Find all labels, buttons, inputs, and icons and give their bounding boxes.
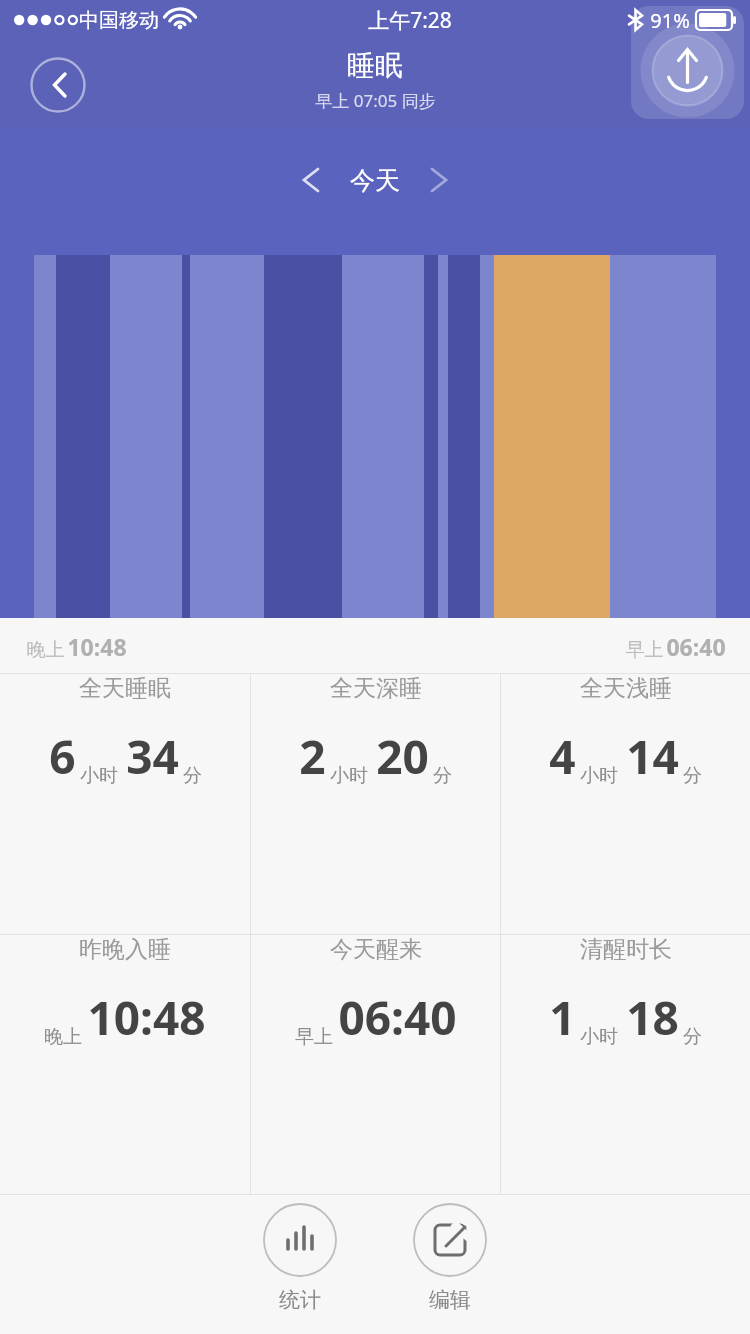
- staticText: 睡眠: [347, 48, 403, 83]
- staticText: 小时: [580, 1025, 618, 1049]
- staticText: 今天醒来: [330, 935, 422, 964]
- staticText: 18: [626, 986, 679, 1049]
- button[interactable]: Next day: [416, 157, 462, 203]
- button[interactable]: Back: [30, 57, 86, 113]
- staticText: 分: [183, 764, 202, 788]
- staticText: 中国移动: [79, 8, 159, 33]
- staticText: 2: [299, 725, 326, 788]
- staticText: 小时: [330, 764, 368, 788]
- button[interactable]: 清醒时长: [501, 935, 750, 1049]
- staticText: 上午7:28: [368, 6, 452, 35]
- button[interactable]: 昨晚入睡: [0, 935, 250, 1049]
- button[interactable]: Sync: [631, 6, 744, 119]
- staticText: 6: [49, 725, 76, 788]
- button[interactable]: 全天睡眠: [0, 674, 250, 788]
- staticText: 全天深睡: [330, 674, 422, 703]
- staticText: 早上: [295, 1025, 333, 1049]
- button[interactable]: 全天深睡: [251, 674, 500, 788]
- button[interactable]: 全天浅睡: [501, 674, 750, 788]
- staticText: 今天: [350, 165, 400, 196]
- staticText: 分: [683, 764, 702, 788]
- staticText: 小时: [80, 764, 118, 788]
- staticText: 91%: [650, 7, 690, 34]
- staticText: 小时: [580, 764, 618, 788]
- staticText: 晚上: [44, 1025, 82, 1049]
- staticText: 晚上: [24, 636, 67, 662]
- staticText: 编辑: [429, 1287, 471, 1313]
- staticText: 分: [683, 1025, 702, 1049]
- staticText: 34: [126, 725, 179, 788]
- staticText: 昨晚入睡: [79, 935, 171, 964]
- staticText: 10:48: [67, 631, 127, 662]
- staticText: 14: [626, 725, 679, 788]
- staticText: 20: [376, 725, 429, 788]
- button[interactable]: 编辑: [403, 1195, 497, 1321]
- button[interactable]: Previous day: [288, 157, 334, 203]
- staticText: 早上 07:05 同步: [315, 89, 436, 112]
- staticText: 分: [433, 764, 452, 788]
- button[interactable]: 今天: [334, 165, 416, 196]
- staticText: 4: [549, 725, 576, 788]
- staticText: 统计: [279, 1287, 321, 1313]
- staticText: 清醒时长: [580, 935, 672, 964]
- staticText: 全天浅睡: [580, 674, 672, 703]
- staticText: 早上: [623, 636, 666, 662]
- staticText: 全天睡眠: [79, 674, 171, 703]
- staticText: 06:40: [666, 631, 726, 662]
- button[interactable]: 统计: [253, 1195, 347, 1321]
- button[interactable]: 今天醒来: [251, 935, 500, 1049]
- staticText: 1: [549, 986, 576, 1049]
- staticText: 06:40: [338, 986, 457, 1049]
- staticText: 10:48: [87, 986, 206, 1049]
